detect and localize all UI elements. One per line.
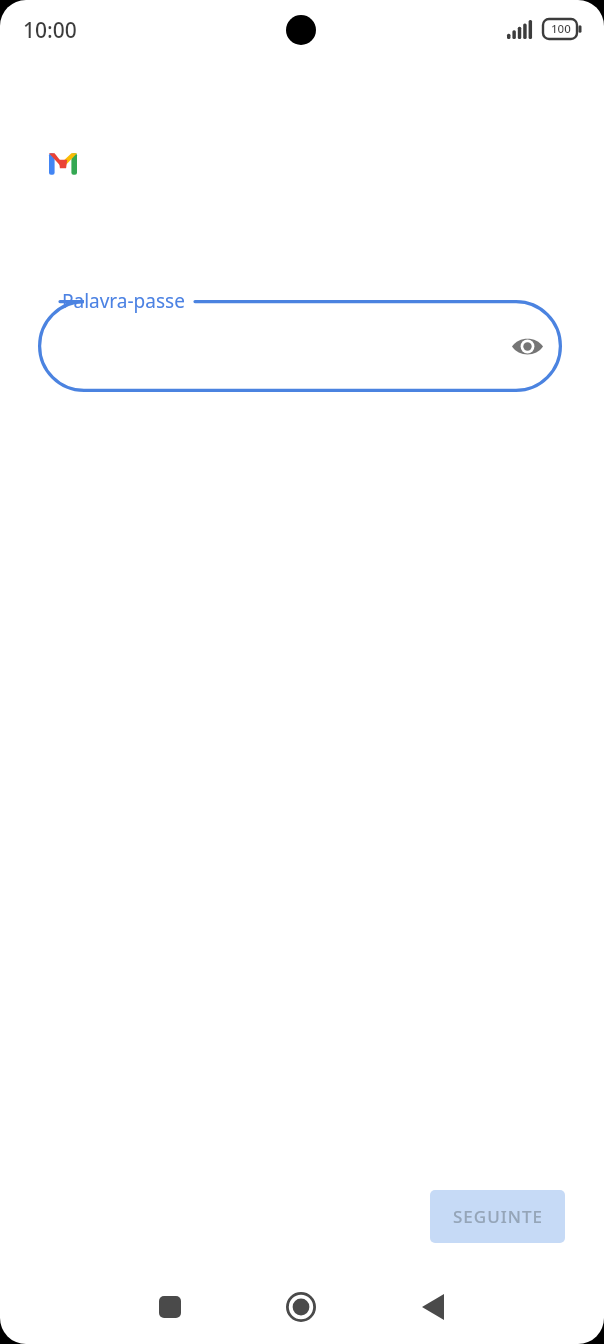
button[interactable]: Back [408, 1282, 458, 1332]
button[interactable]: SEGUINTE [430, 1190, 565, 1243]
staticText: 10:00 [23, 16, 77, 45]
button[interactable]: Palavra-passe [38, 300, 562, 392]
button[interactable]: Home [276, 1282, 326, 1332]
button[interactable]: Mostrar palavra-passe [509, 328, 545, 364]
button[interactable]: Gmail [43, 144, 83, 184]
staticText: 100 [551, 21, 571, 37]
staticText: Palavra-passe [62, 288, 185, 314]
staticText: SEGUINTE [453, 1205, 543, 1228]
button[interactable]: Recents [145, 1282, 195, 1332]
